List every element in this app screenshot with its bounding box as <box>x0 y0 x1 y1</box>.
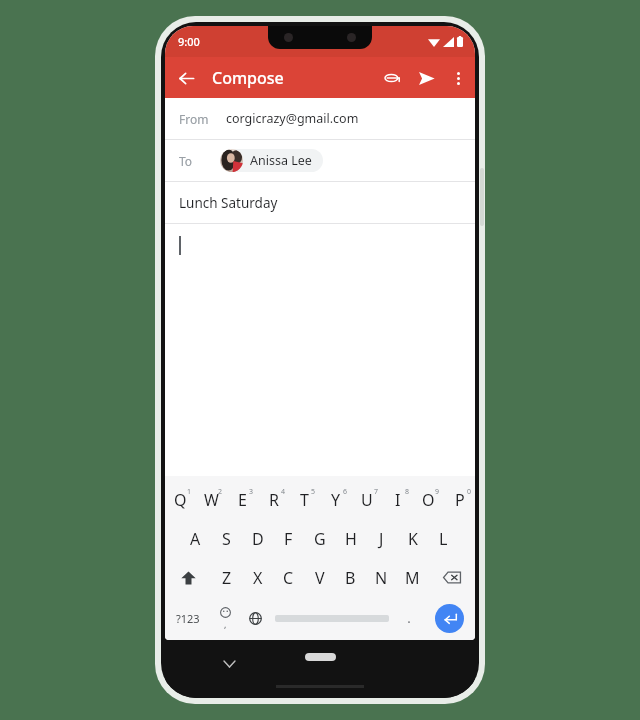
button[interactable]: G <box>304 521 335 556</box>
staticText: 9 <box>435 487 440 497</box>
staticText: N <box>375 567 388 589</box>
staticText: F <box>284 528 293 550</box>
staticText: P <box>455 489 465 511</box>
button[interactable]: Anissa Lee <box>220 149 323 172</box>
staticText: 3 <box>249 487 254 497</box>
button[interactable]: To <box>165 140 475 181</box>
staticText: W <box>204 489 219 511</box>
staticText: Anissa Lee <box>250 152 312 169</box>
staticText: corgicrazy@gmail.com <box>226 110 359 127</box>
button[interactable]: T <box>289 482 320 517</box>
staticText: To <box>179 153 193 169</box>
button[interactable]: Emoji <box>210 598 240 638</box>
button[interactable]: E <box>227 482 258 517</box>
staticText: 8 <box>405 487 410 497</box>
button[interactable]: . <box>394 598 424 638</box>
button[interactable]: L <box>428 521 459 556</box>
button[interactable]: I <box>382 482 413 517</box>
staticText: ?123 <box>176 611 200 626</box>
button[interactable]: Change keyboard language <box>240 598 270 638</box>
staticText: , <box>224 618 227 630</box>
staticText: D <box>252 528 264 550</box>
button[interactable]: Lunch Saturday <box>165 182 475 223</box>
staticText: From <box>179 111 209 127</box>
button[interactable]: Enter <box>435 604 464 633</box>
staticText: M <box>405 567 420 589</box>
staticText: O <box>422 489 435 511</box>
staticText: K <box>408 528 418 550</box>
staticText: R <box>269 489 279 511</box>
button[interactable]: Attach file <box>375 61 409 95</box>
staticText: X <box>253 567 263 589</box>
button[interactable]: A <box>180 521 211 556</box>
button[interactable]: U <box>351 482 382 517</box>
staticText: . <box>407 609 411 627</box>
button[interactable]: H <box>335 521 366 556</box>
staticText: Z <box>222 567 232 589</box>
staticText: G <box>314 528 326 550</box>
button[interactable]: N <box>366 560 397 595</box>
button[interactable]: P <box>444 482 475 517</box>
staticText: Q <box>174 489 187 511</box>
button[interactable]: Back <box>169 61 203 95</box>
button[interactable]: M <box>397 560 428 595</box>
button[interactable]: Home <box>305 653 336 661</box>
button[interactable]: From <box>165 98 475 139</box>
button[interactable]: S <box>211 521 242 556</box>
button[interactable]: ?123 <box>165 598 210 638</box>
button[interactable]: B <box>335 560 366 595</box>
button[interactable]: Q <box>165 482 196 517</box>
button[interactable]: C <box>273 560 304 595</box>
staticText: Lunch Saturday <box>179 194 278 212</box>
button[interactable]: Send <box>409 61 443 95</box>
button[interactable]: X <box>242 560 273 595</box>
staticText: Compose <box>212 67 284 89</box>
staticText: B <box>345 567 356 589</box>
button[interactable]: Z <box>211 560 242 595</box>
staticText: S <box>222 528 231 550</box>
staticText: I <box>395 489 401 511</box>
staticText: 1 <box>187 487 192 497</box>
staticText: E <box>238 489 247 511</box>
staticText: A <box>190 528 201 550</box>
staticText: 7 <box>374 487 379 497</box>
staticText: H <box>345 528 357 550</box>
staticText: 2 <box>218 487 223 497</box>
button[interactable]: More options <box>443 63 473 93</box>
button[interactable]: V <box>304 560 335 595</box>
staticText: U <box>361 489 373 511</box>
button[interactable]: Space <box>270 598 394 638</box>
staticText: L <box>439 528 448 550</box>
staticText: 5 <box>311 487 316 497</box>
staticText: T <box>300 489 309 511</box>
button[interactable]: O <box>413 482 444 517</box>
staticText: V <box>315 567 325 589</box>
button[interactable]: Backspace <box>428 560 475 595</box>
button[interactable]: J <box>366 521 397 556</box>
staticText: Y <box>331 489 341 511</box>
button[interactable]: D <box>242 521 273 556</box>
button[interactable]: K <box>397 521 428 556</box>
staticText: 6 <box>343 487 348 497</box>
staticText: C <box>283 567 294 589</box>
button[interactable]: Hide keyboard <box>217 652 241 676</box>
button[interactable]: Y <box>320 482 351 517</box>
button[interactable]: Shift <box>165 560 211 595</box>
staticText: 9:00 <box>178 34 200 49</box>
staticText: 4 <box>281 487 286 497</box>
button[interactable]: W <box>196 482 227 517</box>
button[interactable]: R <box>258 482 289 517</box>
button[interactable]: F <box>273 521 304 556</box>
staticText: 0 <box>467 487 472 497</box>
staticText: J <box>379 528 384 550</box>
